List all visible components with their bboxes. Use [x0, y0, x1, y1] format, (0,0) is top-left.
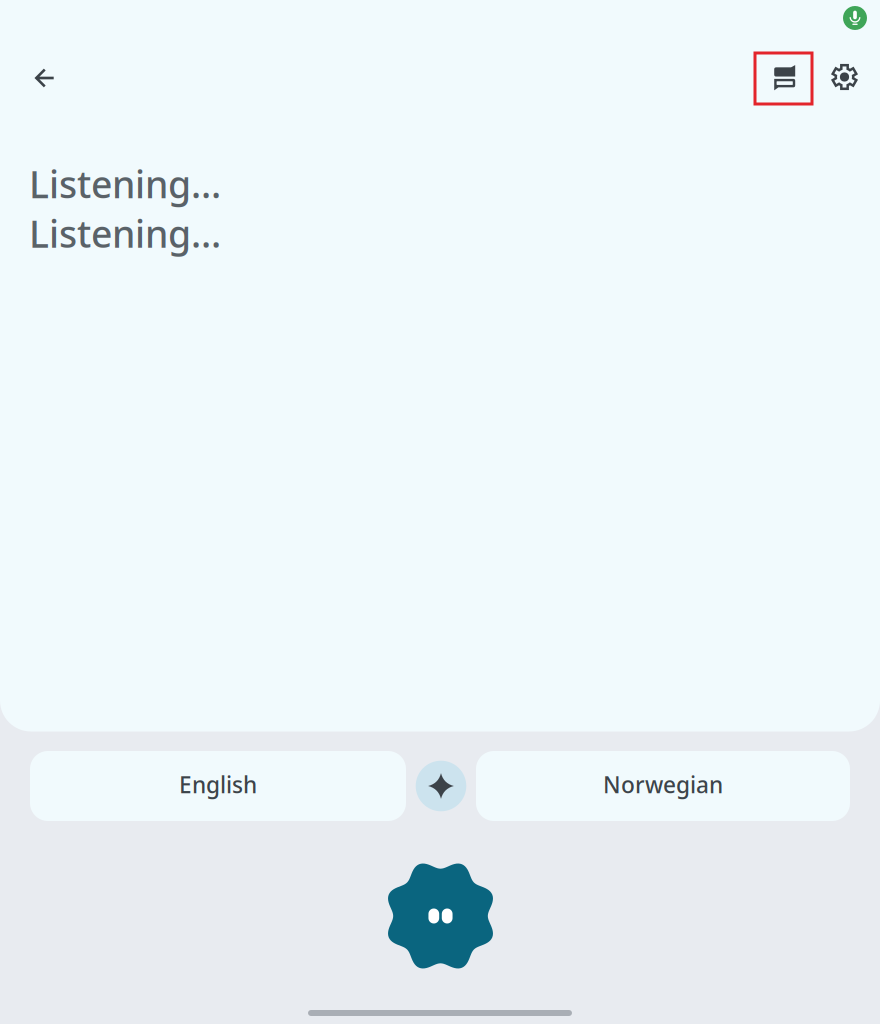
- button[interactable]: Stop listening: [384, 860, 496, 972]
- button[interactable]: Auto detect language: [406, 751, 476, 821]
- staticText: Norwegian: [603, 769, 723, 799]
- staticText: Listening…: [29, 208, 221, 258]
- button[interactable]: Norwegian: [476, 751, 850, 821]
- button[interactable]: Back: [21, 54, 69, 102]
- button[interactable]: English: [30, 751, 406, 821]
- staticText: Listening…: [29, 159, 221, 209]
- staticText: English: [179, 769, 257, 799]
- button[interactable]: Transcript: [755, 53, 812, 104]
- button[interactable]: Settings: [820, 53, 868, 101]
